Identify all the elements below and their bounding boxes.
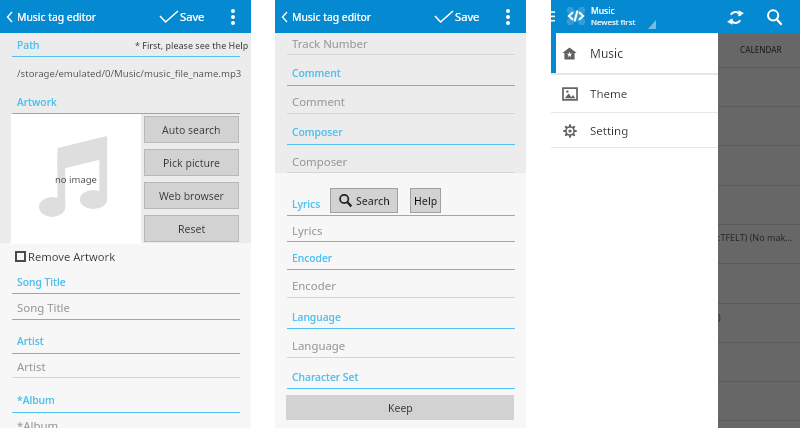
- staticText: Auto search: [162, 123, 221, 137]
- button[interactable]: Back: [2, 6, 17, 27]
- button[interactable]: Open navigation menu: [545, 10, 555, 23]
- staticText: Language: [292, 338, 346, 354]
- staticText: Lyrics: [292, 223, 323, 239]
- staticText: :TFELT) (No mak…: [718, 231, 793, 243]
- staticText: Keep: [388, 401, 413, 415]
- staticText: Track Number: [292, 36, 368, 52]
- staticText: Artwork: [17, 95, 57, 109]
- button[interactable]: More options: [499, 4, 516, 29]
- staticText: Path: [17, 38, 40, 52]
- button[interactable]: Reset: [144, 215, 239, 242]
- staticText: Pick picture: [163, 156, 220, 170]
- button[interactable]: Theme: [551, 75, 718, 112]
- button[interactable]: Save: [157, 4, 208, 29]
- staticText: Song Title: [17, 300, 70, 316]
- staticText: Setting: [590, 123, 629, 139]
- staticText: CALENDAR: [740, 44, 782, 55]
- button[interactable]: More options: [224, 4, 241, 29]
- staticText: Save: [180, 9, 205, 24]
- staticText: Language: [292, 310, 341, 324]
- button[interactable]: Back: [277, 6, 292, 27]
- staticText: Reset: [178, 222, 206, 236]
- staticText: Encoder: [292, 278, 336, 294]
- staticText: Character Set: [292, 370, 359, 384]
- staticText: Composer: [292, 154, 348, 170]
- staticText: Lyrics: [292, 197, 321, 211]
- button[interactable]: Music: [551, 33, 718, 73]
- staticText: Artist: [17, 334, 44, 348]
- staticText: Theme: [590, 86, 628, 102]
- staticText: Song Title: [17, 275, 66, 289]
- staticText: *Album: [17, 393, 55, 407]
- button[interactable]: Pick picture: [144, 149, 239, 176]
- staticText: Music: [591, 5, 615, 17]
- staticText: Search: [356, 194, 390, 208]
- staticText: Music tag editor: [17, 10, 97, 24]
- staticText: Encoder: [292, 251, 333, 265]
- button[interactable]: Keep: [286, 395, 514, 420]
- staticText: Music: [590, 45, 623, 61]
- staticText: Remove Artwork: [28, 249, 116, 264]
- staticText: Save: [455, 9, 480, 24]
- button[interactable]: Search: [330, 188, 398, 213]
- button[interactable]: Setting: [551, 113, 718, 148]
- staticText: Music tag editor: [292, 10, 372, 24]
- button[interactable]: Web browser: [144, 182, 239, 209]
- staticText: Newest first: [591, 17, 636, 28]
- staticText: Comment: [292, 66, 341, 80]
- button[interactable]: Save: [432, 4, 483, 29]
- staticText: no image: [55, 173, 97, 186]
- staticText: Comment: [292, 94, 345, 110]
- button[interactable]: Refresh: [721, 3, 749, 31]
- staticText: Artist: [17, 359, 46, 375]
- staticText: * First, please see the Help: [135, 39, 249, 51]
- staticText: Web browser: [159, 189, 224, 203]
- button[interactable]: Auto search: [144, 116, 239, 143]
- staticText: Help: [414, 194, 438, 208]
- button[interactable]: Search: [760, 3, 788, 31]
- button[interactable]: Remove Artwork: [11, 246, 131, 266]
- staticText: /storage/emulated/0/Music/music_file_nam…: [17, 67, 242, 80]
- button[interactable]: Help: [410, 188, 441, 213]
- staticText: *Album: [17, 418, 59, 428]
- staticText: Composer: [292, 125, 343, 139]
- staticText: ): [718, 311, 721, 323]
